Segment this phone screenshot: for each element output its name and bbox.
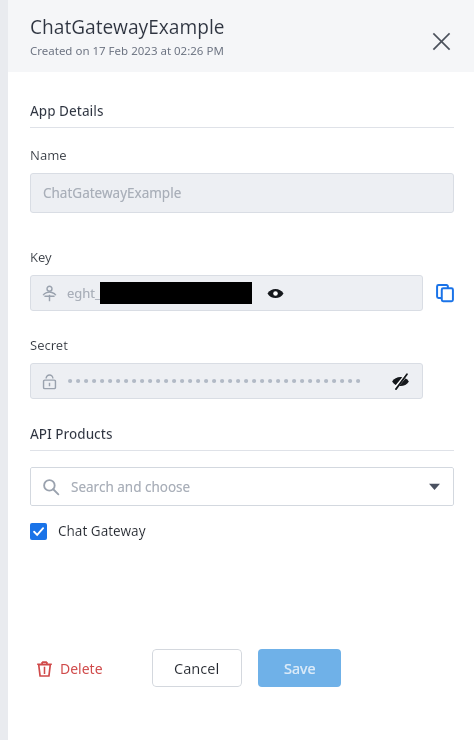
staticText: Key xyxy=(30,248,52,266)
button[interactable]: Cancel xyxy=(152,649,242,687)
staticText: Delete xyxy=(60,659,103,678)
button[interactable]: Delete xyxy=(30,653,109,684)
staticText: Chat Gateway xyxy=(58,522,146,540)
button[interactable]: Hide secret xyxy=(30,363,423,399)
button[interactable]: ChatGatewayExample xyxy=(30,173,454,213)
button[interactable]: Show key xyxy=(264,282,286,304)
staticText: API Products xyxy=(30,425,113,443)
button[interactable]: Search and choose xyxy=(30,467,454,506)
button[interactable]: Hide secret xyxy=(388,369,412,393)
staticText: Save xyxy=(284,658,316,678)
staticText: Search and choose xyxy=(71,478,191,496)
button[interactable]: Chat Gateway xyxy=(30,520,146,542)
staticText: Created on 17 Feb 2023 at 02:26 PM xyxy=(30,43,224,59)
button[interactable]: Save xyxy=(258,649,341,687)
staticText: App Details xyxy=(30,102,104,120)
staticText: Secret xyxy=(30,336,68,354)
button[interactable]: eght_ xyxy=(30,275,423,311)
staticText: ChatGatewayExample xyxy=(43,184,182,202)
staticText: ChatGatewayExample xyxy=(30,14,225,40)
button[interactable]: Close xyxy=(428,28,454,54)
button[interactable]: Copy key xyxy=(436,280,454,306)
staticText: Name xyxy=(30,146,67,164)
staticText: eght_ xyxy=(67,284,101,302)
staticText: Cancel xyxy=(174,658,220,678)
